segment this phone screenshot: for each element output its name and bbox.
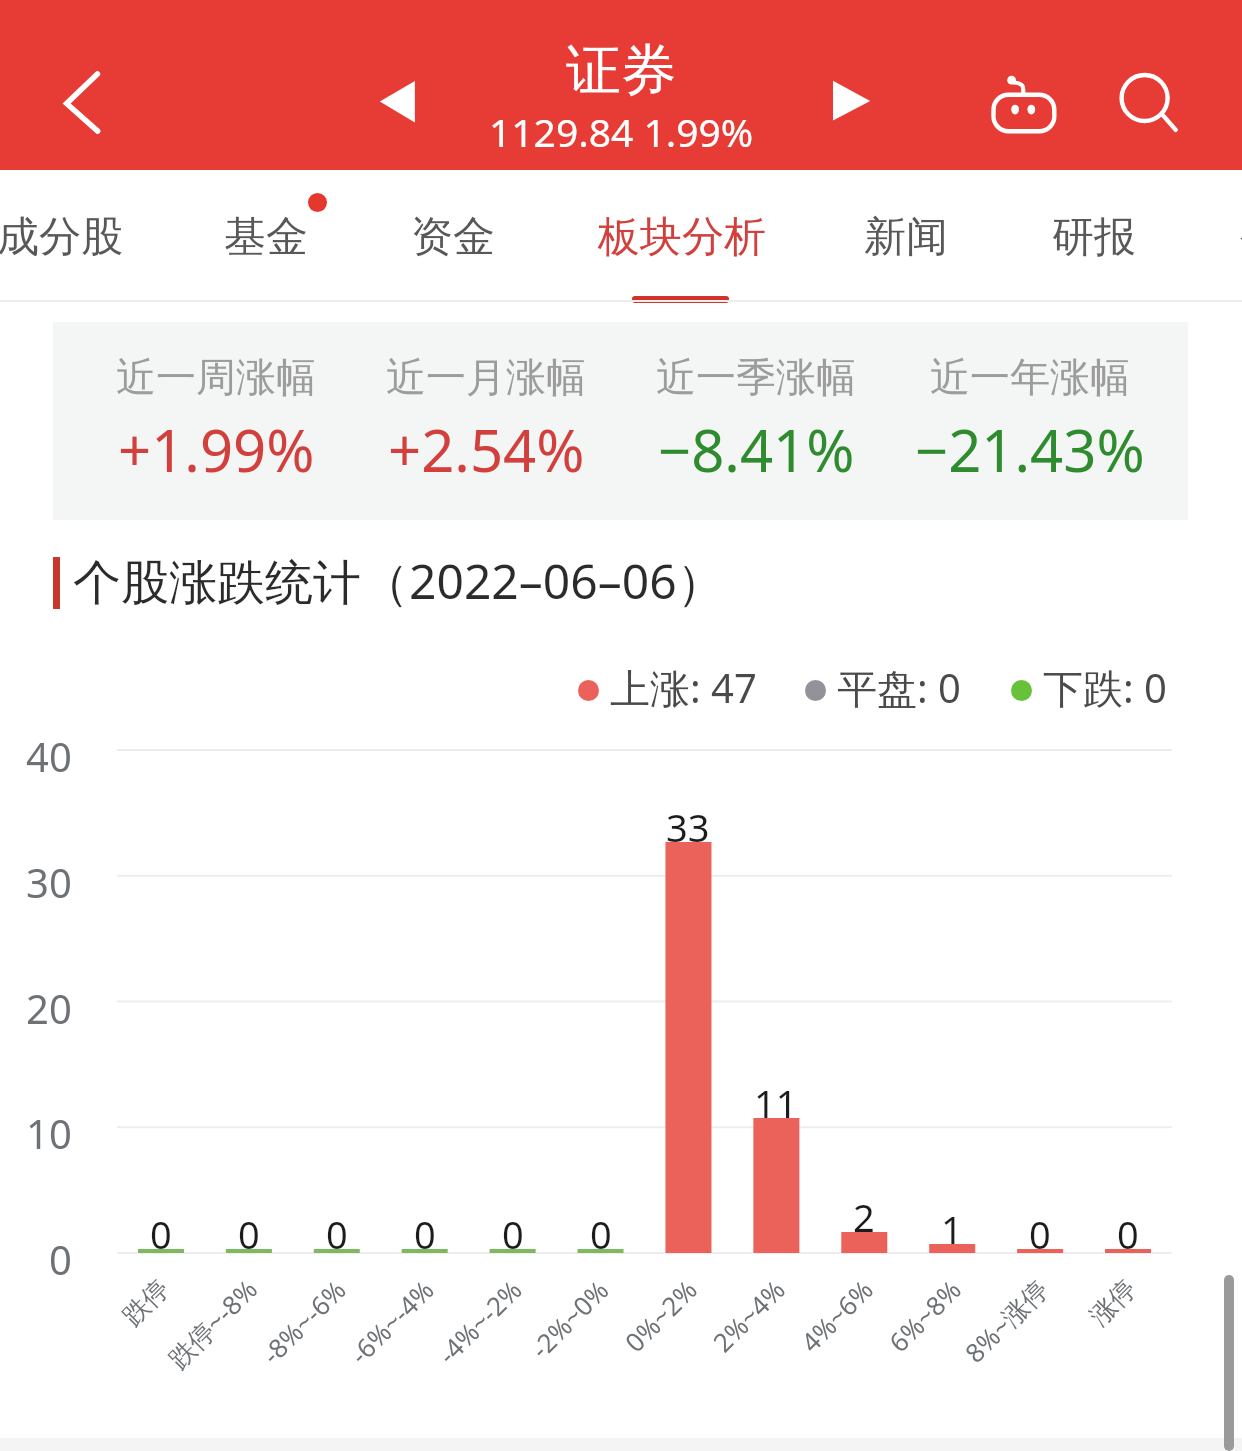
staticText: 0 <box>590 1208 612 1250</box>
staticText: 0 <box>238 1208 260 1250</box>
button[interactable]: 上涨: 47 <box>578 660 757 715</box>
button[interactable]: Next index <box>816 62 888 134</box>
button[interactable]: AI assistant <box>985 62 1063 140</box>
staticText: 30 <box>26 855 72 909</box>
staticText: 1 <box>941 1203 963 1245</box>
staticText: 近一季涨幅 <box>656 352 856 402</box>
staticText: 8%~涨停 <box>957 1271 1056 1370</box>
staticText: 2 <box>853 1191 875 1233</box>
staticText: 个股涨跌统计（2022–06–06） <box>73 548 725 614</box>
button[interactable]: 公告 <box>1212 181 1242 294</box>
staticText: -8%~-6% <box>254 1272 353 1371</box>
staticText: 11 <box>754 1077 798 1119</box>
staticText: 资金 <box>411 211 495 264</box>
staticText: -2%~0% <box>522 1272 616 1365</box>
button[interactable]: 研报 <box>1024 181 1164 294</box>
button[interactable]: 基金 <box>196 181 336 294</box>
staticText: 0%~2% <box>617 1272 704 1359</box>
staticText: 跌停 <box>116 1273 176 1333</box>
staticText: 0 <box>326 1208 348 1250</box>
staticText: 40 <box>26 729 72 783</box>
button[interactable]: 新闻 <box>836 181 976 294</box>
staticText: 涨停 <box>1083 1273 1143 1333</box>
staticText: 成分股 <box>0 211 123 264</box>
staticText: 证券 <box>566 36 676 105</box>
staticText: 新闻 <box>864 211 948 264</box>
staticText: 0 <box>49 1232 72 1286</box>
staticText: 基金 <box>224 211 308 264</box>
staticText: +2.54% <box>388 410 585 489</box>
staticText: -6%~-4% <box>342 1272 441 1371</box>
staticText: 0 <box>1029 1208 1051 1250</box>
staticText: 近一月涨幅 <box>386 352 586 402</box>
button[interactable]: 近一月涨幅 <box>346 322 626 520</box>
staticText: 0 <box>1117 1208 1139 1250</box>
staticText: −8.41% <box>658 410 855 489</box>
staticText: 公告 <box>1240 211 1242 264</box>
staticText: 33 <box>666 801 710 843</box>
staticText: 6%~8% <box>881 1272 968 1359</box>
staticText: 平盘: 0 <box>837 660 961 715</box>
staticText: 研报 <box>1052 211 1136 264</box>
button[interactable]: 近一周涨幅 <box>76 322 356 520</box>
staticText: 4%~6% <box>793 1272 880 1359</box>
staticText: 1129.84 1.99% <box>489 105 754 158</box>
staticText: 0 <box>150 1208 172 1250</box>
staticText: 板块分析 <box>598 211 766 264</box>
staticText: 近一年涨幅 <box>930 352 1130 402</box>
button[interactable]: 资金 <box>383 181 523 294</box>
staticText: -4%~-2% <box>430 1272 529 1371</box>
staticText: 上涨: 47 <box>610 660 757 715</box>
staticText: 0 <box>502 1208 524 1250</box>
staticText: 20 <box>26 981 72 1035</box>
button[interactable]: 板块分析 <box>594 181 770 294</box>
button[interactable]: 近一年涨幅 <box>890 322 1170 520</box>
staticText: 10 <box>26 1106 72 1160</box>
staticText: 跌停~-8% <box>160 1271 265 1376</box>
button[interactable]: 平盘: 0 <box>805 660 961 715</box>
staticText: 2%~4% <box>705 1272 792 1359</box>
staticText: 下跌: 0 <box>1043 660 1167 715</box>
staticText: −21.43% <box>915 410 1145 489</box>
button[interactable]: 下跌: 0 <box>1011 660 1167 715</box>
staticText: 0 <box>414 1208 436 1250</box>
staticText: +1.99% <box>118 410 315 489</box>
staticText: 近一周涨幅 <box>116 352 316 402</box>
button[interactable]: Previous index <box>362 62 434 134</box>
button[interactable]: 成分股 <box>0 181 130 294</box>
button[interactable]: Back <box>45 62 125 142</box>
button[interactable]: Search <box>1106 60 1186 140</box>
button[interactable]: 近一季涨幅 <box>616 322 896 520</box>
